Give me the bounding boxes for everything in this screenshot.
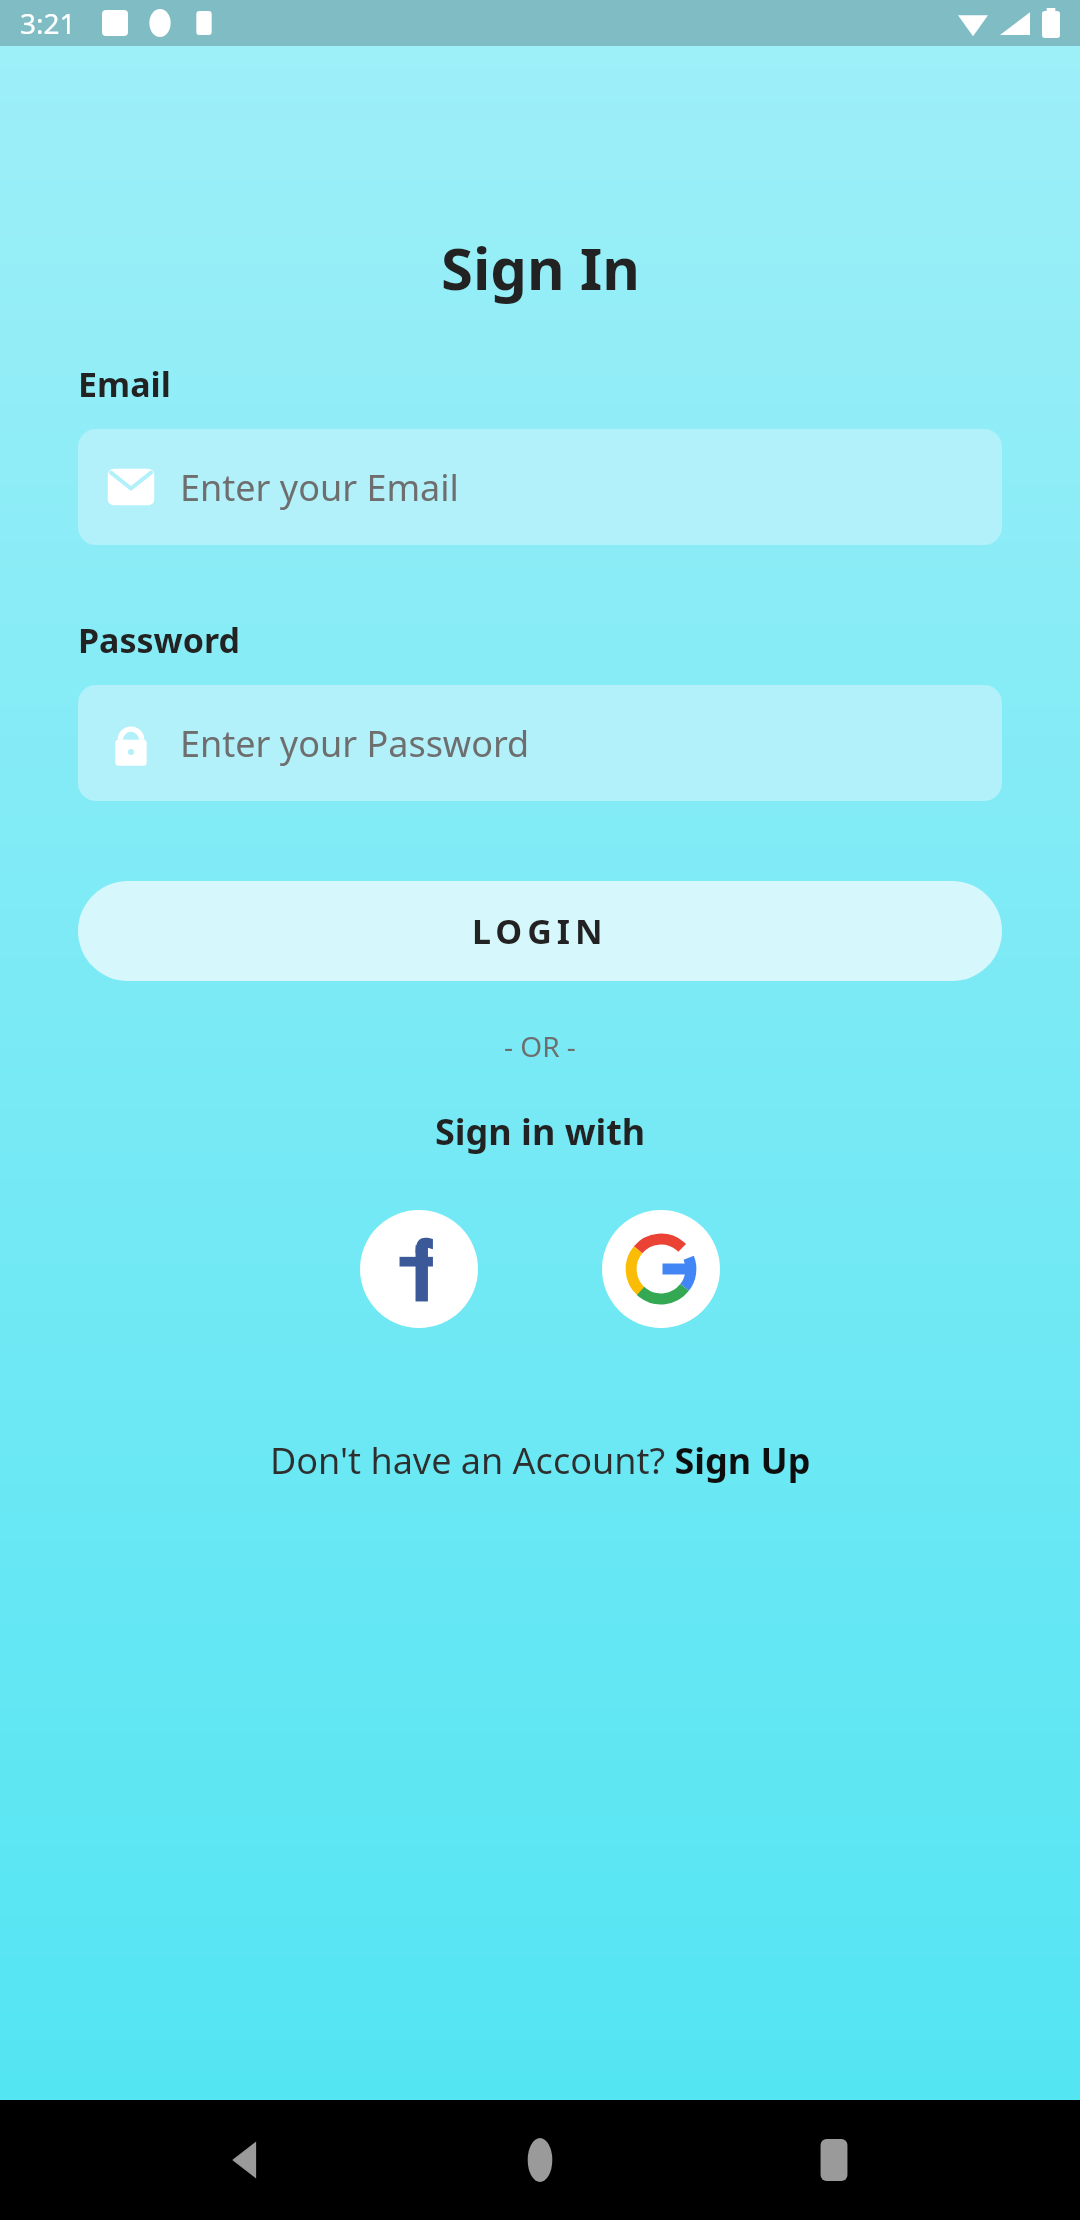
button[interactable]: Enter your Password	[78, 685, 1002, 801]
staticText: 3:21	[20, 4, 76, 42]
button[interactable]: Back	[198, 2112, 294, 2208]
button[interactable]: Don't have an Account? Sign Up	[0, 1436, 1080, 1485]
staticText: Email	[78, 361, 171, 407]
staticText: Don't have an Account? Sign Up	[270, 1436, 811, 1485]
button[interactable]: LOGIN	[78, 881, 1002, 981]
staticText: Sign In	[441, 228, 640, 307]
button[interactable]: Sign in with Google	[602, 1210, 720, 1328]
staticText: Password	[78, 617, 240, 663]
button[interactable]: Recent apps	[786, 2112, 882, 2208]
button[interactable]: Enter your Email	[78, 429, 1002, 545]
button[interactable]: Home	[492, 2112, 588, 2208]
button[interactable]: Sign in with Facebook	[360, 1210, 478, 1328]
staticText: Enter your Password	[180, 719, 530, 768]
staticText: - OR -	[504, 1027, 576, 1065]
staticText: Sign in with	[435, 1107, 646, 1156]
staticText: Enter your Email	[180, 463, 459, 512]
staticText: LOGIN	[472, 908, 608, 954]
